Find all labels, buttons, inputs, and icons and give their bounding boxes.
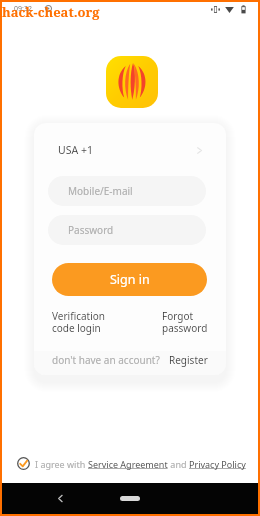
button[interactable]: USA +1 [34, 137, 226, 163]
button[interactable]: Back [56, 494, 65, 503]
button[interactable]: Mobile/E-mail [48, 176, 206, 206]
button[interactable]: I agree [17, 457, 30, 470]
staticText: USA +1 [58, 143, 93, 157]
staticText: Sign in [110, 271, 150, 288]
button[interactable]: Forgot password [162, 309, 208, 335]
button[interactable]: Password [48, 215, 206, 245]
staticText: don't have an account? [52, 353, 160, 367]
button[interactable]: Service Agreement [88, 458, 168, 470]
button[interactable]: Register [169, 353, 208, 367]
staticText: Mobile/E-mail [68, 184, 133, 198]
staticText: Password [68, 223, 114, 237]
button[interactable]: Verification code login [52, 309, 105, 335]
button[interactable]: Privacy Policy [189, 458, 246, 470]
staticText: and [168, 458, 189, 470]
staticText: I agree with [35, 458, 88, 470]
button[interactable]: Home [120, 496, 140, 501]
staticText: hack-cheat.org [2, 3, 100, 21]
button[interactable]: Sign in [52, 263, 207, 296]
staticText: 09:32 [14, 4, 32, 14]
